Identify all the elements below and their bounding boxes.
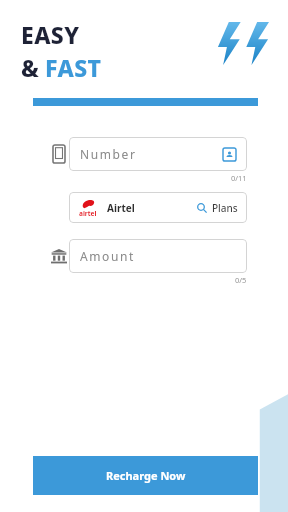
staticText: Plans bbox=[212, 201, 238, 215]
staticText: & bbox=[21, 52, 45, 83]
other: Bank bbox=[48, 239, 69, 273]
other: Phone bbox=[48, 137, 69, 171]
staticText: Amount bbox=[80, 248, 135, 264]
staticText: Recharge Now bbox=[106, 468, 186, 483]
other: Fast bbox=[217, 22, 269, 65]
staticText: EASY bbox=[21, 19, 80, 50]
staticText: Number bbox=[80, 146, 137, 162]
button[interactable]: Amount bbox=[69, 239, 247, 273]
staticText: 0/11 bbox=[231, 173, 247, 183]
button[interactable]: Pick contact bbox=[220, 145, 238, 163]
staticText: Airtel bbox=[107, 201, 135, 215]
staticText: FAST bbox=[45, 52, 102, 83]
button[interactable]: Number bbox=[69, 137, 247, 171]
staticText: airtel bbox=[79, 209, 97, 218]
button[interactable]: airtel bbox=[69, 192, 247, 223]
button[interactable]: Recharge Now bbox=[33, 456, 258, 495]
staticText: 0/5 bbox=[235, 275, 247, 285]
